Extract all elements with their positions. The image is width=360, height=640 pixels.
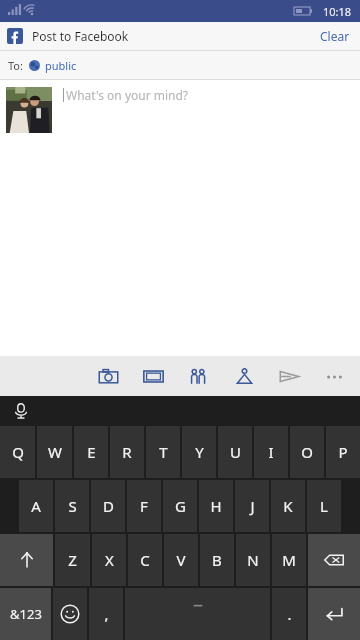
button[interactable]: Send xyxy=(273,360,305,392)
button[interactable]: A xyxy=(19,480,53,532)
button[interactable]: C xyxy=(128,534,162,586)
button[interactable]: E xyxy=(74,426,108,478)
button[interactable]: P xyxy=(326,426,360,478)
button[interactable]: Voice input xyxy=(8,398,34,424)
button[interactable]: R xyxy=(110,426,144,478)
staticText: A xyxy=(31,496,41,516)
staticText: S xyxy=(68,496,77,516)
staticText: V xyxy=(176,550,186,570)
button[interactable]: G xyxy=(163,480,197,532)
button[interactable]: Photo xyxy=(137,360,169,392)
button[interactable]: Enter xyxy=(308,588,360,640)
button[interactable]: I xyxy=(254,426,288,478)
button[interactable]: B xyxy=(200,534,234,586)
staticText: Q xyxy=(12,442,24,462)
button[interactable]: X xyxy=(92,534,126,586)
button[interactable]: S xyxy=(55,480,89,532)
button[interactable]: Add location xyxy=(228,360,260,392)
staticText: F xyxy=(140,496,148,516)
staticText: Post to Facebook xyxy=(32,28,129,44)
button[interactable]: J xyxy=(235,480,269,532)
staticText: , xyxy=(104,604,109,624)
button[interactable]: &123 xyxy=(0,588,51,640)
staticText: D xyxy=(103,496,114,516)
button[interactable]: F xyxy=(127,480,161,532)
staticText: X xyxy=(105,550,114,570)
button[interactable]: Camera xyxy=(92,360,124,392)
button[interactable]: Clear xyxy=(310,24,360,48)
staticText: O xyxy=(301,442,313,462)
button[interactable]: Z xyxy=(55,534,90,586)
button[interactable]: M xyxy=(272,534,306,586)
button[interactable]: To: xyxy=(0,51,360,79)
staticText: H xyxy=(210,496,222,516)
button[interactable]: V xyxy=(164,534,198,586)
staticText: R xyxy=(122,442,132,462)
staticText: Clear xyxy=(320,28,350,44)
button[interactable]: Y xyxy=(182,426,216,478)
button[interactable]: W xyxy=(37,426,72,478)
button[interactable]: H xyxy=(199,480,233,532)
staticText: B xyxy=(212,550,222,570)
button[interactable]: U xyxy=(218,426,252,478)
staticText: P xyxy=(338,442,348,462)
staticText: E xyxy=(87,442,96,462)
staticText: J xyxy=(250,496,255,516)
button[interactable]: T xyxy=(146,426,180,478)
staticText: M xyxy=(282,550,296,570)
staticText: K xyxy=(283,496,293,516)
button[interactable]: . xyxy=(272,588,306,640)
staticText: U xyxy=(230,442,241,462)
button[interactable]: O xyxy=(290,426,324,478)
button[interactable]: Space xyxy=(125,588,270,640)
staticText: public xyxy=(45,58,77,73)
staticText: W xyxy=(48,442,62,462)
button[interactable]: Tag friends xyxy=(182,360,214,392)
staticText: Z xyxy=(68,550,77,570)
button[interactable]: Shift xyxy=(0,534,53,586)
staticText: Y xyxy=(195,442,204,462)
staticText: &123 xyxy=(10,605,42,623)
staticText: . xyxy=(287,604,292,624)
button[interactable]: , xyxy=(89,588,123,640)
button[interactable]: Emoji xyxy=(53,588,87,640)
button[interactable]: More options xyxy=(318,360,350,392)
button[interactable]: What's on your mind? xyxy=(63,87,360,133)
button[interactable]: N xyxy=(236,534,270,586)
staticText: What's on your mind? xyxy=(66,87,189,103)
button[interactable]: K xyxy=(271,480,305,532)
button[interactable]: Backspace xyxy=(308,534,360,586)
staticText: T xyxy=(159,442,168,462)
button[interactable]: D xyxy=(91,480,125,532)
staticText: G xyxy=(175,496,186,516)
button[interactable]: Q xyxy=(0,426,35,478)
staticText: I xyxy=(268,442,274,462)
button[interactable]: L xyxy=(307,480,341,532)
staticText: C xyxy=(140,550,150,570)
staticText: To: xyxy=(8,58,23,73)
staticText: L xyxy=(320,496,328,516)
staticText: N xyxy=(247,550,259,570)
staticText: 10:18 xyxy=(323,4,352,19)
